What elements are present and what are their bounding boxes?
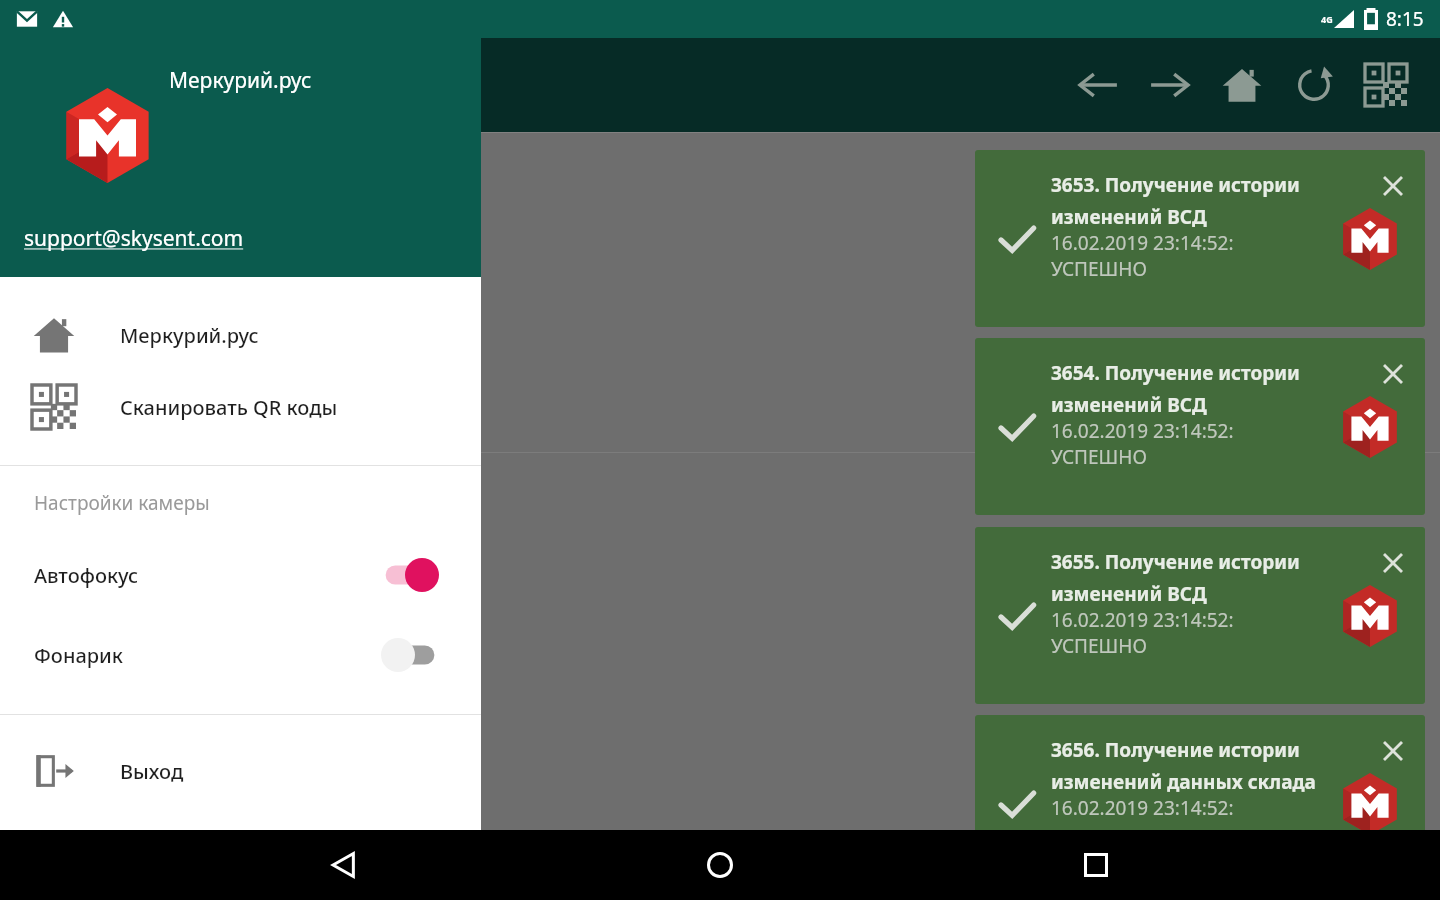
button[interactable]: 3653. Получение истории изменений ВСД xyxy=(975,150,1425,327)
button[interactable]: Фонарик xyxy=(0,622,481,688)
staticText: 3654. Получение истории изменений ВСД xyxy=(1051,360,1351,418)
button[interactable]: Меркурий.рус xyxy=(0,299,481,371)
button[interactable]: Home xyxy=(688,833,752,897)
button[interactable]: 3654. Получение истории изменений ВСД xyxy=(975,338,1425,515)
staticText: 3653. Получение истории изменений ВСД xyxy=(1051,172,1351,230)
staticText: 4G xyxy=(1321,13,1333,25)
button[interactable]: Сканировать QR коды xyxy=(0,371,481,443)
button[interactable]: Выход xyxy=(0,735,481,807)
button[interactable]: Dismiss xyxy=(1373,543,1413,583)
staticText: 16.02.2019 23:14:52: xyxy=(1051,795,1234,821)
staticText: Выход xyxy=(120,758,184,785)
button[interactable]: Dismiss xyxy=(1373,166,1413,206)
staticText: 16.02.2019 23:14:52: xyxy=(1051,230,1234,256)
staticText: УСПЕШНО xyxy=(1051,444,1147,470)
button[interactable]: Dismiss xyxy=(1373,731,1413,771)
button[interactable]: 3655. Получение истории изменений ВСД xyxy=(975,527,1425,704)
staticText: Автофокус xyxy=(34,562,139,589)
button[interactable]: Dismiss xyxy=(1373,354,1413,394)
button[interactable]: Home xyxy=(1206,49,1278,121)
button[interactable]: Forward xyxy=(1134,49,1206,121)
button[interactable]: Back xyxy=(1062,49,1134,121)
button[interactable]: Автофокус xyxy=(0,542,481,608)
button[interactable]: Back xyxy=(312,833,376,897)
staticText: УСПЕШНО xyxy=(1051,256,1147,282)
staticText: Сканировать QR коды xyxy=(120,394,338,421)
staticText: 8:15 xyxy=(1386,6,1424,32)
staticText: Настройки камеры xyxy=(34,490,210,516)
staticText: 16.02.2019 23:14:52: xyxy=(1051,418,1234,444)
staticText: 16.02.2019 23:14:52: xyxy=(1051,607,1234,633)
button[interactable]: Recent apps xyxy=(1064,833,1128,897)
button[interactable]: support@skysent.com xyxy=(24,224,244,253)
button[interactable]: Refresh xyxy=(1278,49,1350,121)
staticText: Меркурий.рус xyxy=(169,66,312,95)
staticText: 3656. Получение истории изменений данных… xyxy=(1051,737,1351,795)
staticText: Фонарик xyxy=(34,642,123,669)
staticText: УСПЕШНО xyxy=(1051,633,1147,659)
button[interactable]: 3656. Получение истории изменений данных… xyxy=(975,715,1425,892)
button[interactable]: Scan QR code xyxy=(1350,49,1422,121)
staticText: Меркурий.рус xyxy=(120,322,259,349)
staticText: 3655. Получение истории изменений ВСД xyxy=(1051,549,1351,607)
